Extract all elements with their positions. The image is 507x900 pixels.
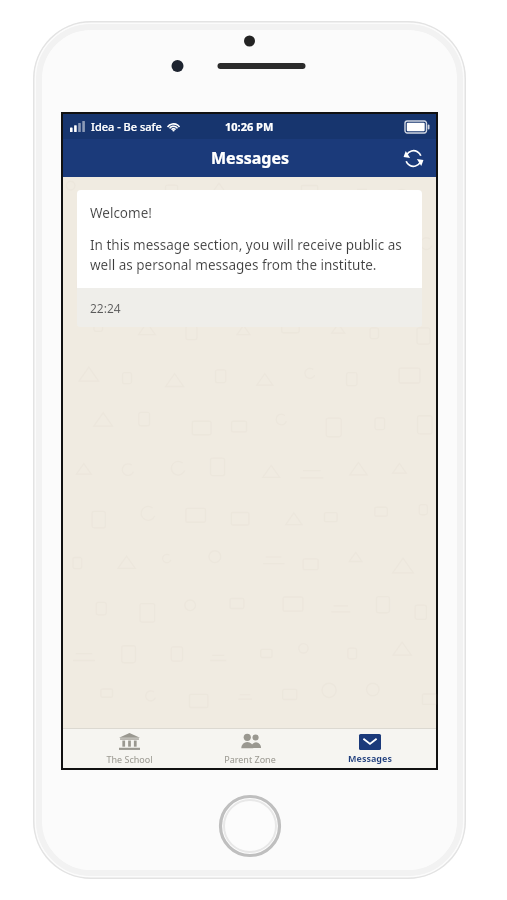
button[interactable]: The School (74, 729, 184, 768)
button[interactable]: Messages (315, 729, 425, 768)
staticText: 22:24 (90, 300, 121, 316)
staticText: 10:26 PM (225, 119, 274, 134)
staticText: Welcome! (90, 204, 152, 222)
staticText: Parent Zone (224, 753, 276, 765)
staticText: Idea - Be safe (91, 119, 162, 134)
button[interactable]: Parent Zone (195, 729, 305, 768)
staticText: Messages (348, 752, 392, 764)
staticText: Messages (211, 147, 289, 169)
button[interactable]: Refresh (398, 143, 428, 173)
button[interactable]: Welcome! (77, 190, 422, 327)
staticText: In this message section, you will receiv… (90, 236, 409, 274)
staticText: The School (106, 753, 153, 765)
